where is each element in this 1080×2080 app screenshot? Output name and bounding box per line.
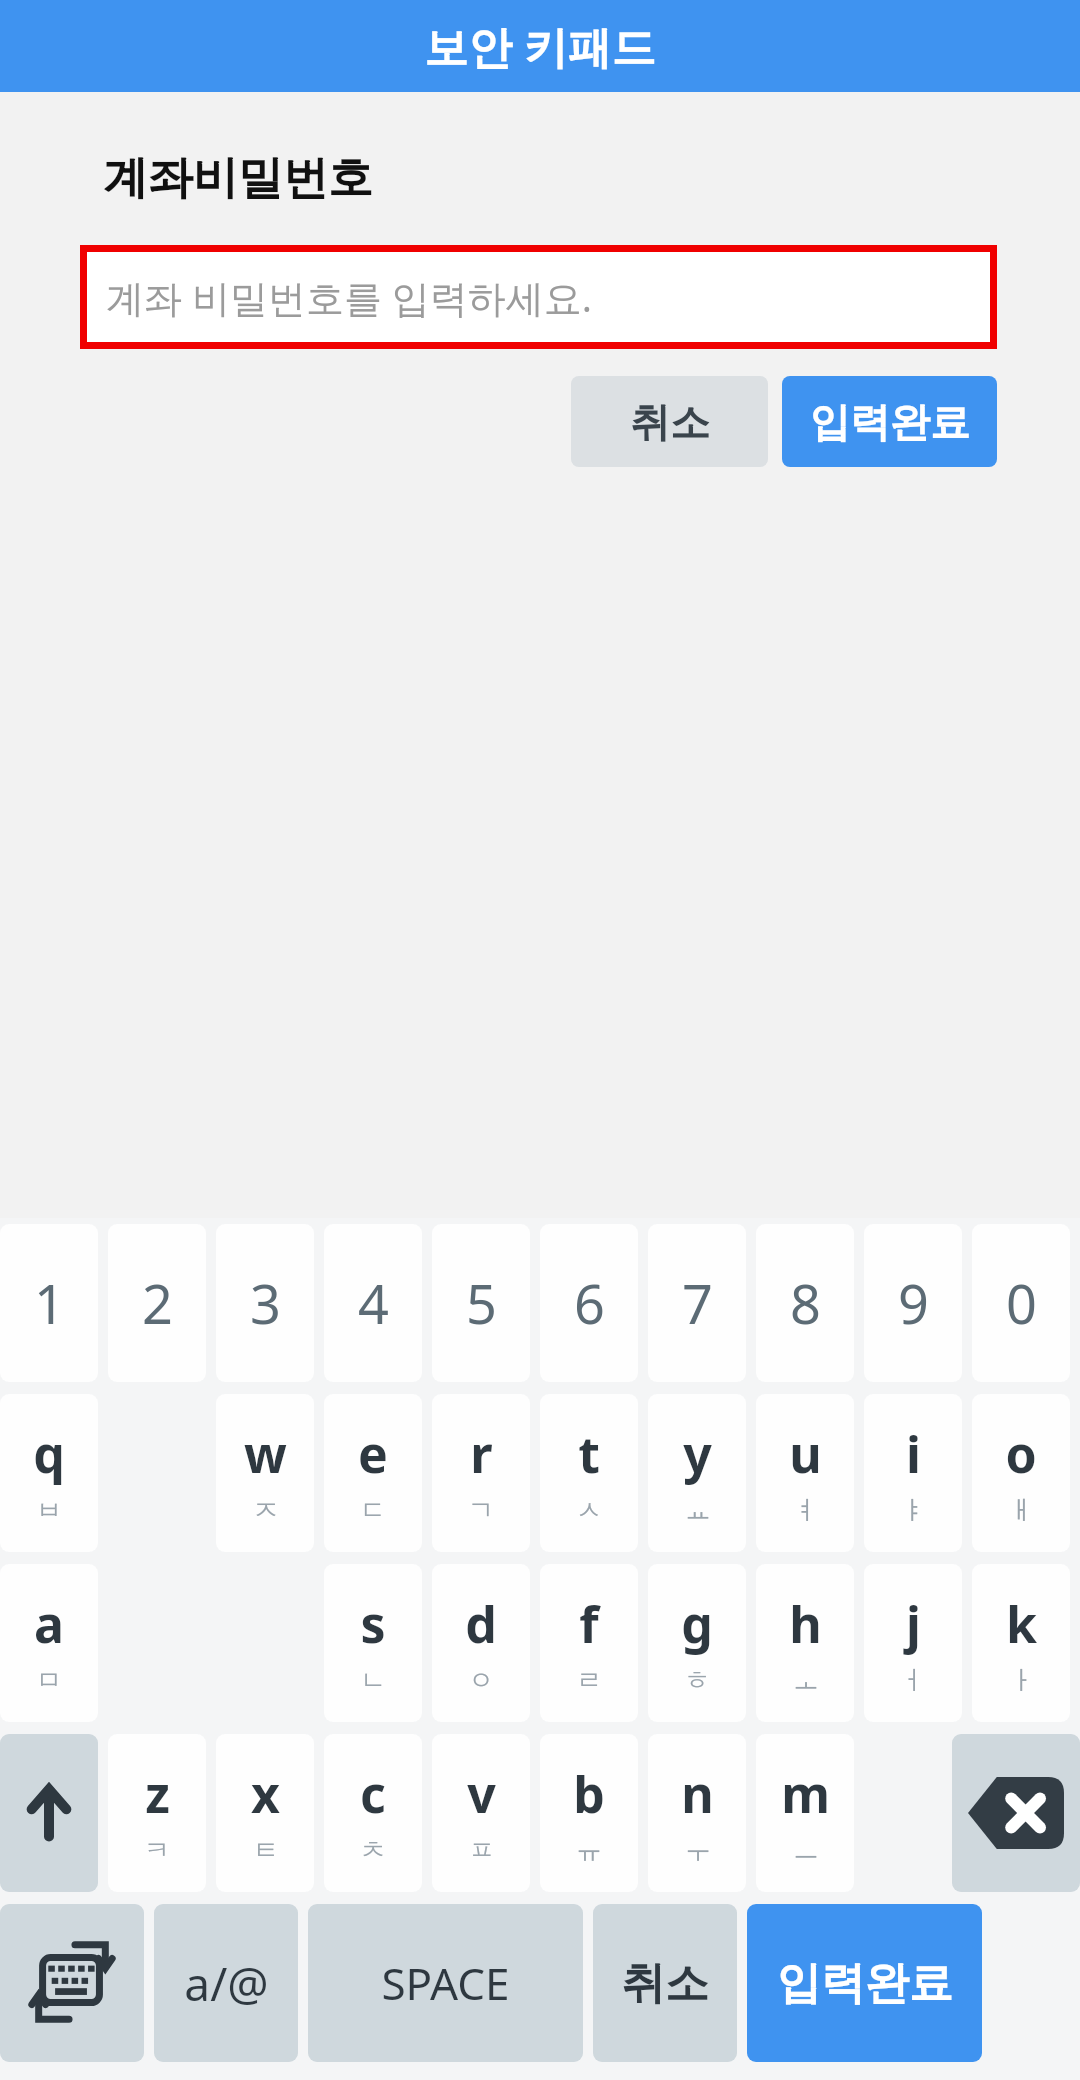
staticText: q [33,1420,65,1488]
staticText: z [145,1760,170,1828]
staticText: a [34,1590,64,1658]
staticText: u [789,1420,822,1488]
button[interactable]: k [972,1564,1070,1722]
button[interactable]: 2 [108,1224,206,1382]
staticText: ㅕ [793,1494,819,1527]
button[interactable]: 계좌 비밀번호를 입력하세요. [80,245,997,349]
button[interactable]: n [648,1734,746,1892]
staticText: 취소 [621,1956,709,2011]
button[interactable]: r [432,1394,530,1552]
button[interactable]: u [756,1394,854,1552]
button[interactable]: 6 [540,1224,638,1382]
staticText: ㅠ [576,1834,602,1867]
button[interactable]: c [324,1734,422,1892]
staticText: 0 [1006,1266,1037,1340]
button[interactable]: m [756,1734,854,1892]
button[interactable]: g [648,1564,746,1722]
staticText: e [358,1420,388,1488]
button[interactable]: 입력완료 [747,1904,982,2062]
button[interactable]: t [540,1394,638,1552]
button[interactable]: 입력완료 [782,376,997,467]
button[interactable]: f [540,1564,638,1722]
staticText: ㅋ [144,1834,170,1867]
button[interactable]: 8 [756,1224,854,1382]
button[interactable]: w [216,1394,314,1552]
staticText: k [1006,1590,1037,1658]
staticText: ㅈ [253,1494,279,1527]
staticText: 계좌 비밀번호를 입력하세요. [106,271,592,323]
staticText: ㅂ [36,1494,62,1527]
staticText: 9 [898,1266,929,1340]
button[interactable]: j [864,1564,962,1722]
staticText: m [781,1760,830,1828]
button[interactable]: y [648,1394,746,1552]
button[interactable]: SPACE [308,1904,583,2062]
staticText: ㅌ [253,1834,279,1867]
button[interactable]: Change keyboard [0,1904,144,2062]
staticText: r [470,1420,493,1488]
button[interactable]: 취소 [593,1904,737,2062]
staticText: 취소 [630,397,710,447]
staticText: 1 [34,1266,65,1340]
staticText: o [1005,1420,1037,1488]
button[interactable]: o [972,1394,1070,1552]
button[interactable]: b [540,1734,638,1892]
staticText: ㅗ [793,1664,819,1697]
staticText: ㅛ [685,1494,711,1527]
staticText: j [906,1590,921,1658]
staticText: w [244,1420,287,1488]
staticText: s [360,1590,386,1658]
button[interactable]: h [756,1564,854,1722]
staticText: v [467,1760,496,1828]
button[interactable]: 3 [216,1224,314,1382]
staticText: 8 [790,1266,821,1340]
staticText: ㅑ [900,1494,926,1527]
staticText: ㅜ [685,1834,711,1867]
button[interactable]: v [432,1734,530,1892]
button[interactable]: 7 [648,1224,746,1382]
staticText: 2 [142,1266,173,1340]
button[interactable]: 9 [864,1224,962,1382]
staticText: f [579,1590,599,1658]
button[interactable]: i [864,1394,962,1552]
staticText: ㄹ [576,1664,602,1697]
staticText: g [681,1590,713,1658]
staticText: x [251,1760,280,1828]
staticText: ㅊ [360,1834,386,1867]
staticText: ㅡ [793,1834,819,1867]
button[interactable]: s [324,1564,422,1722]
staticText: h [789,1590,822,1658]
button[interactable]: 1 [0,1224,98,1382]
staticText: 3 [250,1266,281,1340]
button[interactable]: 4 [324,1224,422,1382]
staticText: b [573,1760,605,1828]
staticText: 계좌비밀번호 [103,150,373,207]
button[interactable]: e [324,1394,422,1552]
staticText: ㄷ [360,1494,386,1527]
staticText: a/@ [184,1952,269,2015]
staticText: ㅎ [684,1664,710,1697]
staticText: ㄴ [360,1664,386,1697]
staticText: 입력완료 [777,1956,953,2011]
button[interactable]: 0 [972,1224,1070,1382]
staticText: y [683,1420,712,1488]
staticText: c [360,1760,386,1828]
button[interactable]: 5 [432,1224,530,1382]
button[interactable]: 취소 [571,376,768,467]
button[interactable]: a/@ [154,1904,298,2062]
staticText: ㅁ [36,1664,62,1697]
button[interactable]: x [216,1734,314,1892]
staticText: 입력완료 [810,397,970,447]
staticText: d [465,1590,497,1658]
button[interactable]: d [432,1564,530,1722]
button[interactable]: q [0,1394,98,1552]
button[interactable]: Shift [0,1734,98,1892]
staticText: ㅍ [469,1834,495,1867]
staticText: i [906,1420,921,1488]
button[interactable]: a [0,1564,98,1722]
button[interactable]: Backspace [952,1734,1080,1892]
button[interactable]: z [108,1734,206,1892]
staticText: 7 [682,1266,713,1340]
staticText: SPACE [381,1953,510,2013]
staticText: ㅅ [576,1494,602,1527]
